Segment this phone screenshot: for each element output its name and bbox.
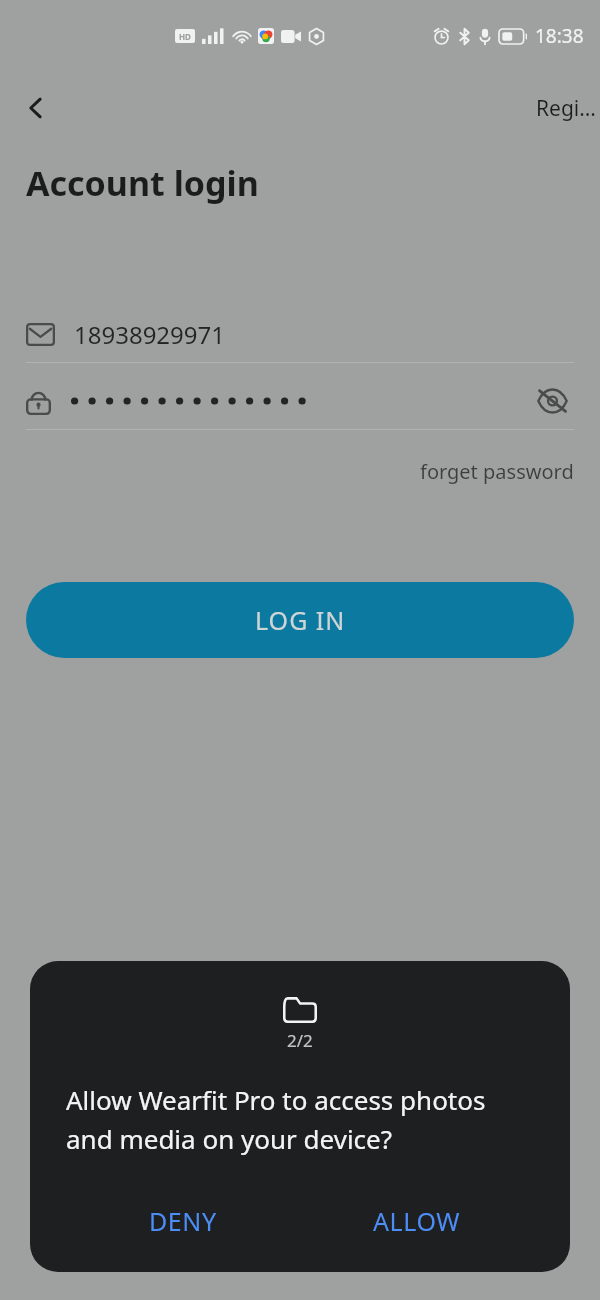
- staticText: LOG IN: [255, 603, 346, 637]
- button[interactable]: forget password: [420, 452, 574, 491]
- button[interactable]: ALLOW: [300, 1192, 534, 1250]
- button[interactable]: Show password: [530, 379, 574, 423]
- staticText: HD: [179, 31, 191, 42]
- staticText: forget password: [420, 458, 574, 485]
- staticText: Account login: [26, 160, 259, 206]
- button[interactable]: 18938929971: [26, 306, 574, 362]
- staticText: 18938929971: [74, 318, 226, 351]
- staticText: Allow Wearfit Pro to access photos and m…: [66, 1082, 534, 1156]
- staticText: 2/2: [287, 1029, 313, 1052]
- button[interactable]: DENY: [66, 1192, 300, 1250]
- staticText: 18:38: [535, 23, 584, 49]
- staticText: Regi…: [536, 94, 596, 123]
- button[interactable]: Back: [10, 82, 62, 134]
- button[interactable]: Regi…: [532, 84, 600, 133]
- button[interactable]: LOG IN: [26, 582, 574, 658]
- staticText: DENY: [149, 1204, 217, 1238]
- staticText: ALLOW: [373, 1204, 461, 1238]
